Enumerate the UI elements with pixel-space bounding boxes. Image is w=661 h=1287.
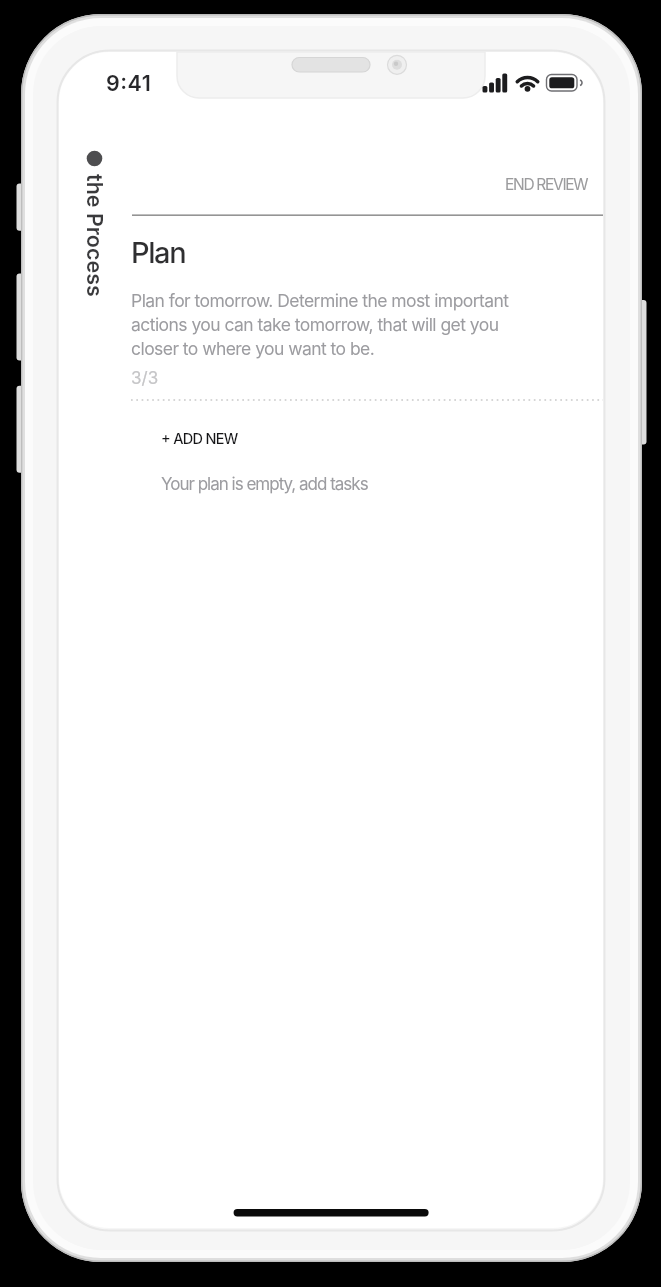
staticText: Plan for tomorrow. Determine the most im… [131,290,509,359]
button[interactable]: END REVIEW [498,168,595,201]
staticText: Your plan is empty, add tasks [161,474,368,495]
button[interactable]: + ADD NEW [154,423,245,455]
staticText: Plan [131,235,186,270]
staticText: 9:41 [106,70,152,96]
staticText: END REVIEW [505,175,588,194]
staticText: + ADD NEW [161,430,238,448]
staticText: 3/3 [131,368,159,389]
